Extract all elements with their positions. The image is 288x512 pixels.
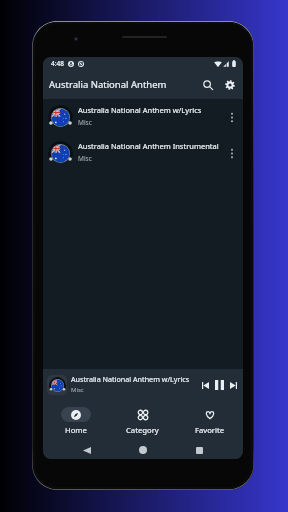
- staticText: Misc: [78, 154, 92, 163]
- staticText: 4:48: [51, 59, 64, 68]
- button[interactable]: Recent apps: [191, 442, 207, 458]
- staticText: Misc: [78, 118, 92, 127]
- staticText: Australia National Anthem: [49, 78, 167, 91]
- button[interactable]: Australia National Anthem w/Lyrics: [43, 369, 243, 401]
- button[interactable]: Pause: [213, 379, 225, 391]
- staticText: Home: [65, 425, 87, 435]
- button[interactable]: Category: [109, 401, 176, 441]
- button[interactable]: Settings: [221, 76, 239, 94]
- staticText: Misc: [71, 386, 84, 394]
- button[interactable]: Back: [79, 442, 95, 458]
- button[interactable]: Home: [135, 442, 151, 458]
- button[interactable]: Australia National Anthem w/Lyrics: [43, 99, 243, 135]
- staticText: Category: [126, 425, 159, 435]
- button[interactable]: Australia National Anthem Instrumental: [43, 135, 243, 171]
- button[interactable]: Next: [227, 379, 239, 391]
- button[interactable]: More options: [224, 145, 240, 161]
- staticText: Australia National Anthem Instrumental: [78, 141, 219, 151]
- staticText: Favorite: [195, 425, 225, 435]
- button[interactable]: Home: [43, 401, 109, 441]
- button[interactable]: Search: [199, 76, 217, 94]
- button[interactable]: Favorite: [176, 401, 243, 441]
- staticText: Australia National Anthem w/Lyrics: [71, 374, 190, 384]
- button[interactable]: More options: [224, 109, 240, 125]
- staticText: Australia National Anthem w/Lyrics: [78, 105, 202, 115]
- button[interactable]: Previous: [199, 379, 211, 391]
